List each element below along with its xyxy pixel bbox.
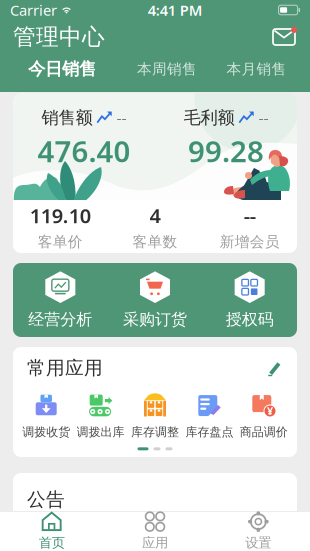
staticText: Carrier (10, 0, 57, 20)
staticText: 授权码 (226, 310, 274, 329)
button[interactable]: 应用 (103, 512, 207, 551)
staticText: -- (116, 107, 126, 128)
button[interactable]: 库存盘点 (182, 394, 237, 439)
button[interactable]: 库存调整 (128, 394, 182, 439)
staticText: 常用应用 (27, 357, 103, 380)
staticText: 毛利额 (183, 107, 234, 128)
staticText: ¥ (267, 404, 273, 418)
staticText: 调拨收货 (22, 425, 70, 439)
button[interactable]: ¥ (237, 394, 291, 439)
staticText: 公告 (27, 488, 65, 511)
staticText: 库存盘点 (185, 425, 233, 439)
staticText: 经营分析 (28, 310, 92, 329)
staticText: 476.40 (37, 131, 130, 170)
staticText: 本周销售 (137, 60, 197, 78)
staticText: 首页 (39, 535, 65, 551)
staticText: 119.10 (30, 202, 91, 229)
staticText: 管理中心 (13, 23, 105, 51)
button[interactable]: 今日销售 (0, 54, 124, 84)
button[interactable]: 设置 (207, 512, 310, 551)
staticText: 4 (149, 202, 160, 229)
button[interactable]: 本月销售 (210, 54, 303, 84)
button[interactable]: 调拨出库 (73, 394, 128, 439)
staticText: 设置 (245, 535, 271, 551)
staticText: 客单数 (132, 233, 177, 251)
button[interactable]: 经营分析 (13, 271, 108, 329)
button[interactable]: 首页 (0, 512, 103, 551)
button[interactable]: 调拨收货 (19, 394, 73, 439)
button[interactable]: 授权码 (202, 271, 297, 329)
staticText: 4:41 PM (148, 0, 203, 20)
staticText: 客单价 (38, 233, 83, 251)
staticText: 应用 (142, 535, 168, 551)
staticText: 库存调整 (131, 425, 179, 439)
staticText: 新增会员 (220, 233, 280, 251)
staticText: 今日销售 (28, 58, 96, 80)
staticText: 销售额 (41, 107, 92, 128)
staticText: 99.28 (188, 131, 264, 170)
staticText: -- (244, 202, 256, 229)
button[interactable]: Edit apps (267, 360, 283, 376)
button[interactable]: 采购订货 (108, 271, 202, 329)
staticText: 商品调价 (240, 425, 288, 439)
staticText: 调拨出库 (77, 425, 125, 439)
staticText: 本月销售 (226, 60, 286, 78)
button[interactable]: 本周销售 (124, 54, 210, 84)
staticText: 采购订货 (123, 310, 187, 329)
button[interactable]: Messages (271, 27, 297, 47)
staticText: -- (258, 107, 268, 128)
